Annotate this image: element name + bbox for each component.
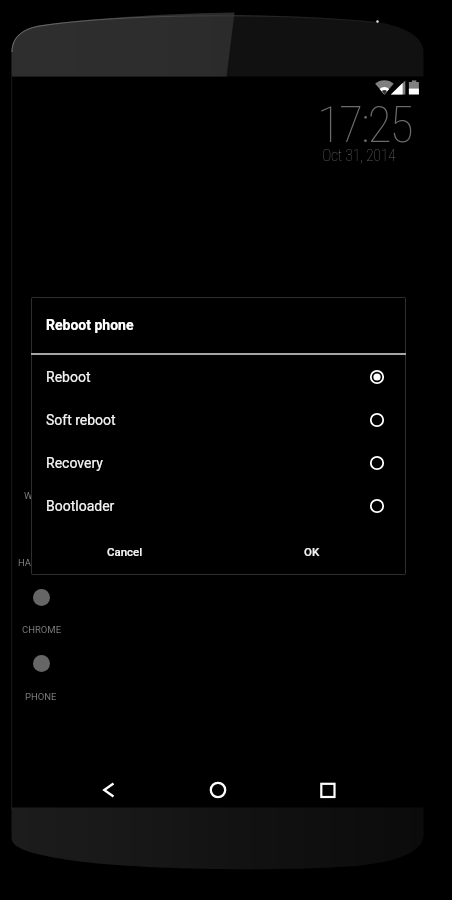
staticText: Reboot phone	[46, 317, 134, 333]
button[interactable]: Cancel	[31, 527, 218, 575]
staticText: Bootloader	[46, 498, 369, 514]
staticText: WHATS	[24, 490, 57, 501]
button[interactable]: Back	[78, 765, 138, 815]
staticText: PHONE	[25, 691, 57, 702]
staticText: HANGOUTS	[18, 557, 69, 568]
button[interactable]: Recent apps	[298, 765, 358, 815]
staticText: Oct 31, 2014	[322, 146, 396, 165]
button[interactable]: Recovery	[31, 441, 406, 484]
button[interactable]: Chrome	[33, 589, 50, 606]
button[interactable]: Soft reboot	[31, 398, 406, 441]
staticText: Cancel	[107, 545, 143, 558]
button[interactable]: OK	[218, 527, 406, 575]
button[interactable]: Home	[188, 765, 248, 815]
staticText: CHROME	[22, 624, 62, 635]
staticText: Recovery	[46, 455, 369, 471]
staticText: OK	[304, 545, 320, 558]
button[interactable]: Bootloader	[31, 484, 406, 527]
staticText: 17:25	[317, 96, 412, 155]
staticText: Soft reboot	[46, 412, 369, 428]
button[interactable]: Reboot	[31, 355, 406, 398]
button[interactable]: Phone	[33, 655, 50, 672]
staticText: Reboot	[46, 369, 369, 385]
